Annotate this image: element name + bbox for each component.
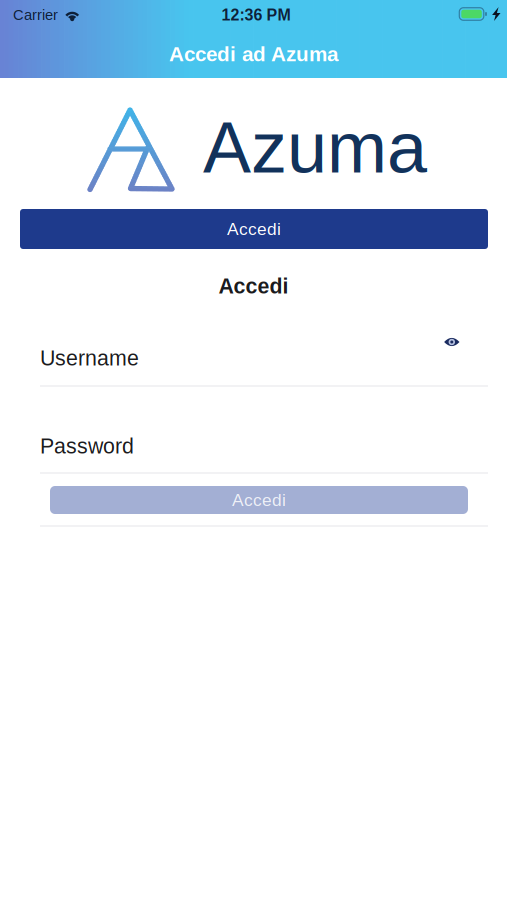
button[interactable]: Accedi <box>20 209 488 249</box>
staticText: Username <box>40 346 139 370</box>
staticText: Accedi <box>218 274 288 298</box>
staticText: Carrier <box>13 7 58 23</box>
button[interactable]: Show password <box>435 327 469 357</box>
staticText: Accedi <box>227 219 281 239</box>
staticText: Azuma <box>203 107 427 188</box>
staticText: 12:36 PM <box>221 6 290 24</box>
button[interactable]: Accedi <box>50 486 468 514</box>
staticText: Password <box>40 434 134 458</box>
staticText: Accedi <box>232 490 286 510</box>
staticText: Accedi ad Azuma <box>169 42 338 66</box>
